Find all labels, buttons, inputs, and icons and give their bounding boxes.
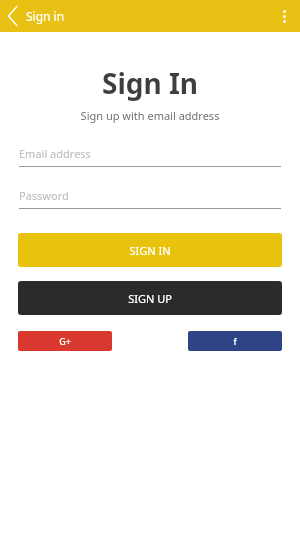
- staticText: Password: [19, 188, 69, 203]
- button[interactable]: Back: [0, 0, 26, 32]
- staticText: SIGN IN: [129, 243, 171, 258]
- button[interactable]: Email address: [19, 145, 281, 167]
- button[interactable]: SIGN UP: [18, 281, 282, 315]
- button[interactable]: G+: [18, 331, 112, 351]
- staticText: Sign In: [0, 64, 300, 102]
- staticText: SIGN UP: [128, 291, 172, 306]
- button[interactable]: SIGN IN: [18, 233, 282, 267]
- button[interactable]: f: [188, 331, 282, 351]
- button[interactable]: More options: [268, 0, 300, 32]
- staticText: Sign up with email address: [0, 108, 300, 123]
- staticText: G+: [59, 335, 71, 347]
- staticText: Email address: [19, 146, 91, 161]
- staticText: f: [233, 335, 237, 347]
- staticText: Sign in: [26, 8, 65, 24]
- button[interactable]: Password: [19, 187, 281, 209]
